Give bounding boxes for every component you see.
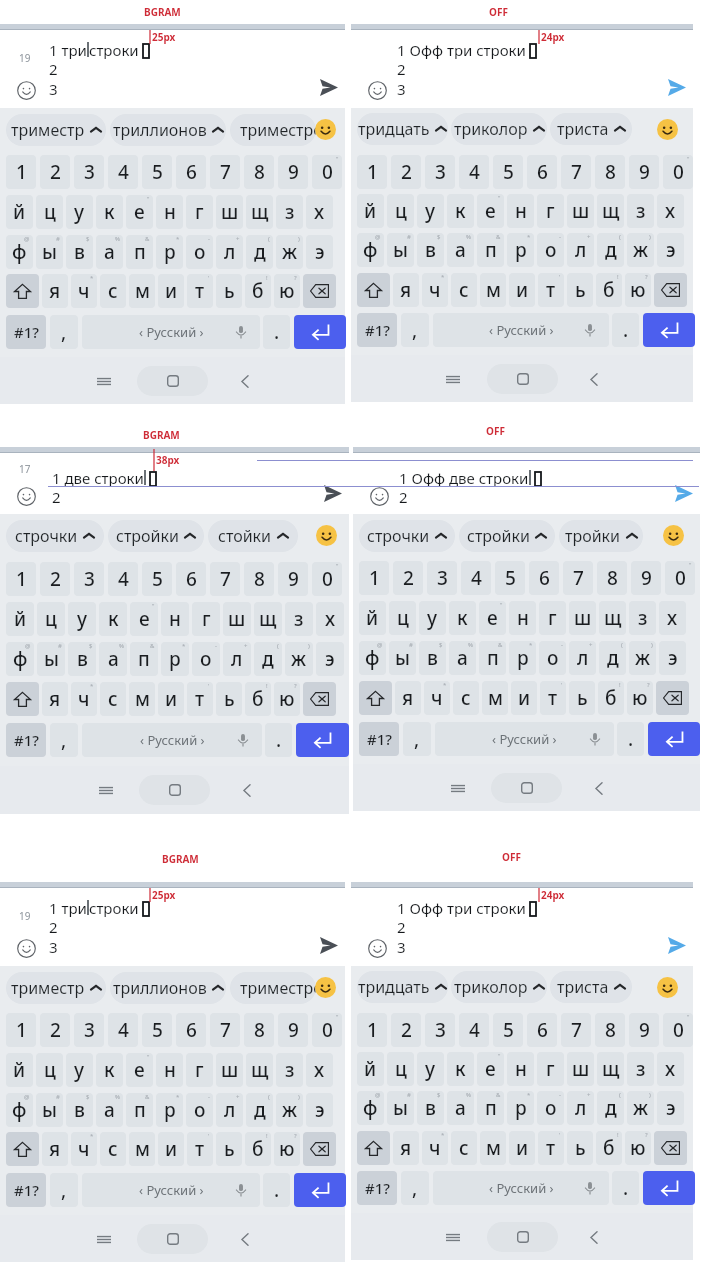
button[interactable]: т xyxy=(187,1132,213,1166)
button[interactable]: 1 xyxy=(359,561,389,595)
button[interactable]: 5 xyxy=(142,155,172,189)
button[interactable]: ю xyxy=(274,274,300,308)
button[interactable]: в xyxy=(417,1091,444,1125)
button[interactable]: ю xyxy=(274,1132,300,1166)
button[interactable]: ж xyxy=(285,642,313,676)
button[interactable]: ш xyxy=(567,194,594,228)
button[interactable]: 0 xyxy=(312,1013,342,1047)
button[interactable]: д xyxy=(254,642,282,676)
button[interactable]: 8 xyxy=(597,561,627,595)
button[interactable]: э xyxy=(306,235,333,269)
button[interactable]: Enter xyxy=(643,313,695,347)
button[interactable]: Home xyxy=(137,366,208,396)
button[interactable]: 9 xyxy=(278,562,308,596)
button[interactable]: д xyxy=(246,1093,273,1127)
button[interactable]: и xyxy=(509,273,535,307)
button[interactable]: , xyxy=(403,722,431,756)
button[interactable]: 2 xyxy=(391,155,421,189)
button[interactable]: б xyxy=(596,1131,622,1165)
button[interactable]: с xyxy=(453,681,479,715)
button[interactable]: строчки xyxy=(6,520,104,552)
button[interactable]: 8 xyxy=(244,155,274,189)
button[interactable]: 5 xyxy=(495,561,525,595)
button[interactable]: щ xyxy=(246,1053,273,1087)
button[interactable]: л xyxy=(567,233,594,267)
button[interactable]: 5 xyxy=(493,155,523,189)
button[interactable]: Backspace xyxy=(654,273,687,307)
button[interactable]: н xyxy=(507,194,534,228)
button[interactable]: ь xyxy=(216,1132,242,1166)
button[interactable]: 1 xyxy=(6,1013,36,1047)
button[interactable]: р xyxy=(156,235,183,269)
button[interactable]: 1 xyxy=(6,155,36,189)
button[interactable]: Shift xyxy=(6,274,39,308)
button[interactable]: е xyxy=(477,1052,504,1086)
button[interactable]: в xyxy=(66,235,93,269)
button[interactable]: д xyxy=(246,235,273,269)
button[interactable]: 5 xyxy=(142,1013,172,1047)
button[interactable]: ь xyxy=(216,682,242,716)
button[interactable]: м xyxy=(482,681,508,715)
button[interactable]: . xyxy=(263,315,290,349)
button[interactable]: в xyxy=(66,1093,93,1127)
button[interactable]: я xyxy=(395,681,421,715)
button[interactable]: ц xyxy=(37,602,65,636)
button[interactable]: 1 xyxy=(6,562,36,596)
button[interactable]: 0 xyxy=(663,1013,693,1047)
button[interactable]: а xyxy=(447,233,474,267)
button[interactable]: 7 xyxy=(561,1013,591,1047)
button[interactable]: э xyxy=(657,1091,684,1125)
button[interactable]: ю xyxy=(627,681,653,715)
button[interactable]: 6 xyxy=(529,561,559,595)
button[interactable]: д xyxy=(597,1091,624,1125)
button[interactable]: у xyxy=(66,1053,93,1087)
button[interactable]: ы xyxy=(36,235,63,269)
button[interactable]: 7 xyxy=(210,155,240,189)
button[interactable]: Recent apps xyxy=(89,366,119,396)
button[interactable]: г xyxy=(186,195,213,229)
button[interactable]: ‹ Русский › xyxy=(82,723,262,757)
button[interactable]: Recent apps xyxy=(438,1222,468,1252)
button[interactable]: Back xyxy=(579,364,609,394)
button[interactable]: триместр xyxy=(6,972,106,1004)
button[interactable]: о xyxy=(539,641,566,675)
button[interactable]: 9 xyxy=(278,155,308,189)
button[interactable]: м xyxy=(480,1131,506,1165)
button[interactable]: Recent apps xyxy=(89,1224,119,1254)
button[interactable]: 5 xyxy=(142,562,172,596)
button[interactable]: э xyxy=(306,1093,333,1127)
button[interactable]: д xyxy=(599,641,626,675)
button[interactable]: т xyxy=(538,1131,564,1165)
button[interactable]: Shift xyxy=(357,1131,390,1165)
button[interactable]: , xyxy=(401,1171,429,1205)
button[interactable]: т xyxy=(187,682,213,716)
button[interactable]: 3 xyxy=(74,155,104,189)
button[interactable]: в xyxy=(419,641,446,675)
button[interactable]: Enter xyxy=(296,723,349,757)
button[interactable]: т xyxy=(187,274,213,308)
button[interactable]: и xyxy=(509,1131,535,1165)
button[interactable]: триста xyxy=(550,971,632,1003)
button[interactable]: б xyxy=(245,682,271,716)
button[interactable]: Enter xyxy=(294,315,346,349)
button[interactable]: з xyxy=(276,1053,303,1087)
button[interactable]: р xyxy=(156,1093,183,1127)
button[interactable]: ш xyxy=(569,601,596,635)
button[interactable]: ц xyxy=(36,1053,63,1087)
button[interactable]: з xyxy=(276,195,303,229)
button[interactable]: ч xyxy=(71,274,97,308)
button[interactable]: 9 xyxy=(629,1013,659,1047)
button[interactable]: й xyxy=(6,195,33,229)
button[interactable]: и xyxy=(511,681,537,715)
button[interactable]: м xyxy=(129,274,155,308)
button[interactable]: к xyxy=(96,195,123,229)
button[interactable]: щ xyxy=(246,195,273,229)
button[interactable]: Back xyxy=(232,775,262,805)
button[interactable]: н xyxy=(156,195,183,229)
button[interactable]: ы xyxy=(389,641,416,675)
button[interactable]: х xyxy=(316,602,344,636)
button[interactable]: . xyxy=(265,723,292,757)
button[interactable]: ф xyxy=(6,235,33,269)
button[interactable]: триллионов xyxy=(110,114,226,146)
button[interactable]: стойки xyxy=(208,520,298,552)
